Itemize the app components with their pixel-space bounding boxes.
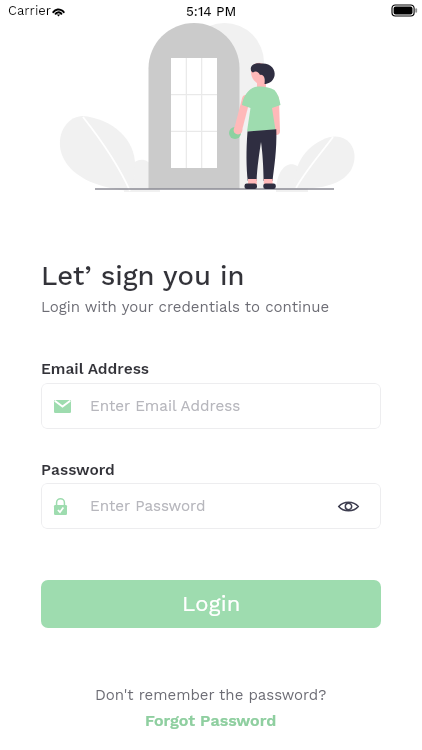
staticText: Login: [182, 591, 241, 617]
button[interactable]: Show password: [332, 490, 365, 523]
button[interactable]: Login: [41, 580, 381, 628]
staticText: Don't remember the password?: [95, 686, 327, 704]
staticText: Carrier: [8, 3, 52, 18]
staticText: Email Address: [41, 360, 150, 378]
staticText: Enter Password: [90, 497, 206, 515]
button[interactable]: Enter Email Address: [41, 383, 381, 429]
staticText: Login with your credentials to continue: [41, 298, 330, 316]
button[interactable]: Enter Password: [41, 483, 381, 529]
staticText: Let’ sign you in: [41, 259, 245, 291]
staticText: Forgot Password: [145, 711, 277, 730]
staticText: Password: [41, 461, 115, 479]
staticText: Enter Email Address: [90, 397, 241, 415]
button[interactable]: Forgot Password: [139, 709, 283, 732]
staticText: 5:14 PM: [186, 3, 237, 19]
